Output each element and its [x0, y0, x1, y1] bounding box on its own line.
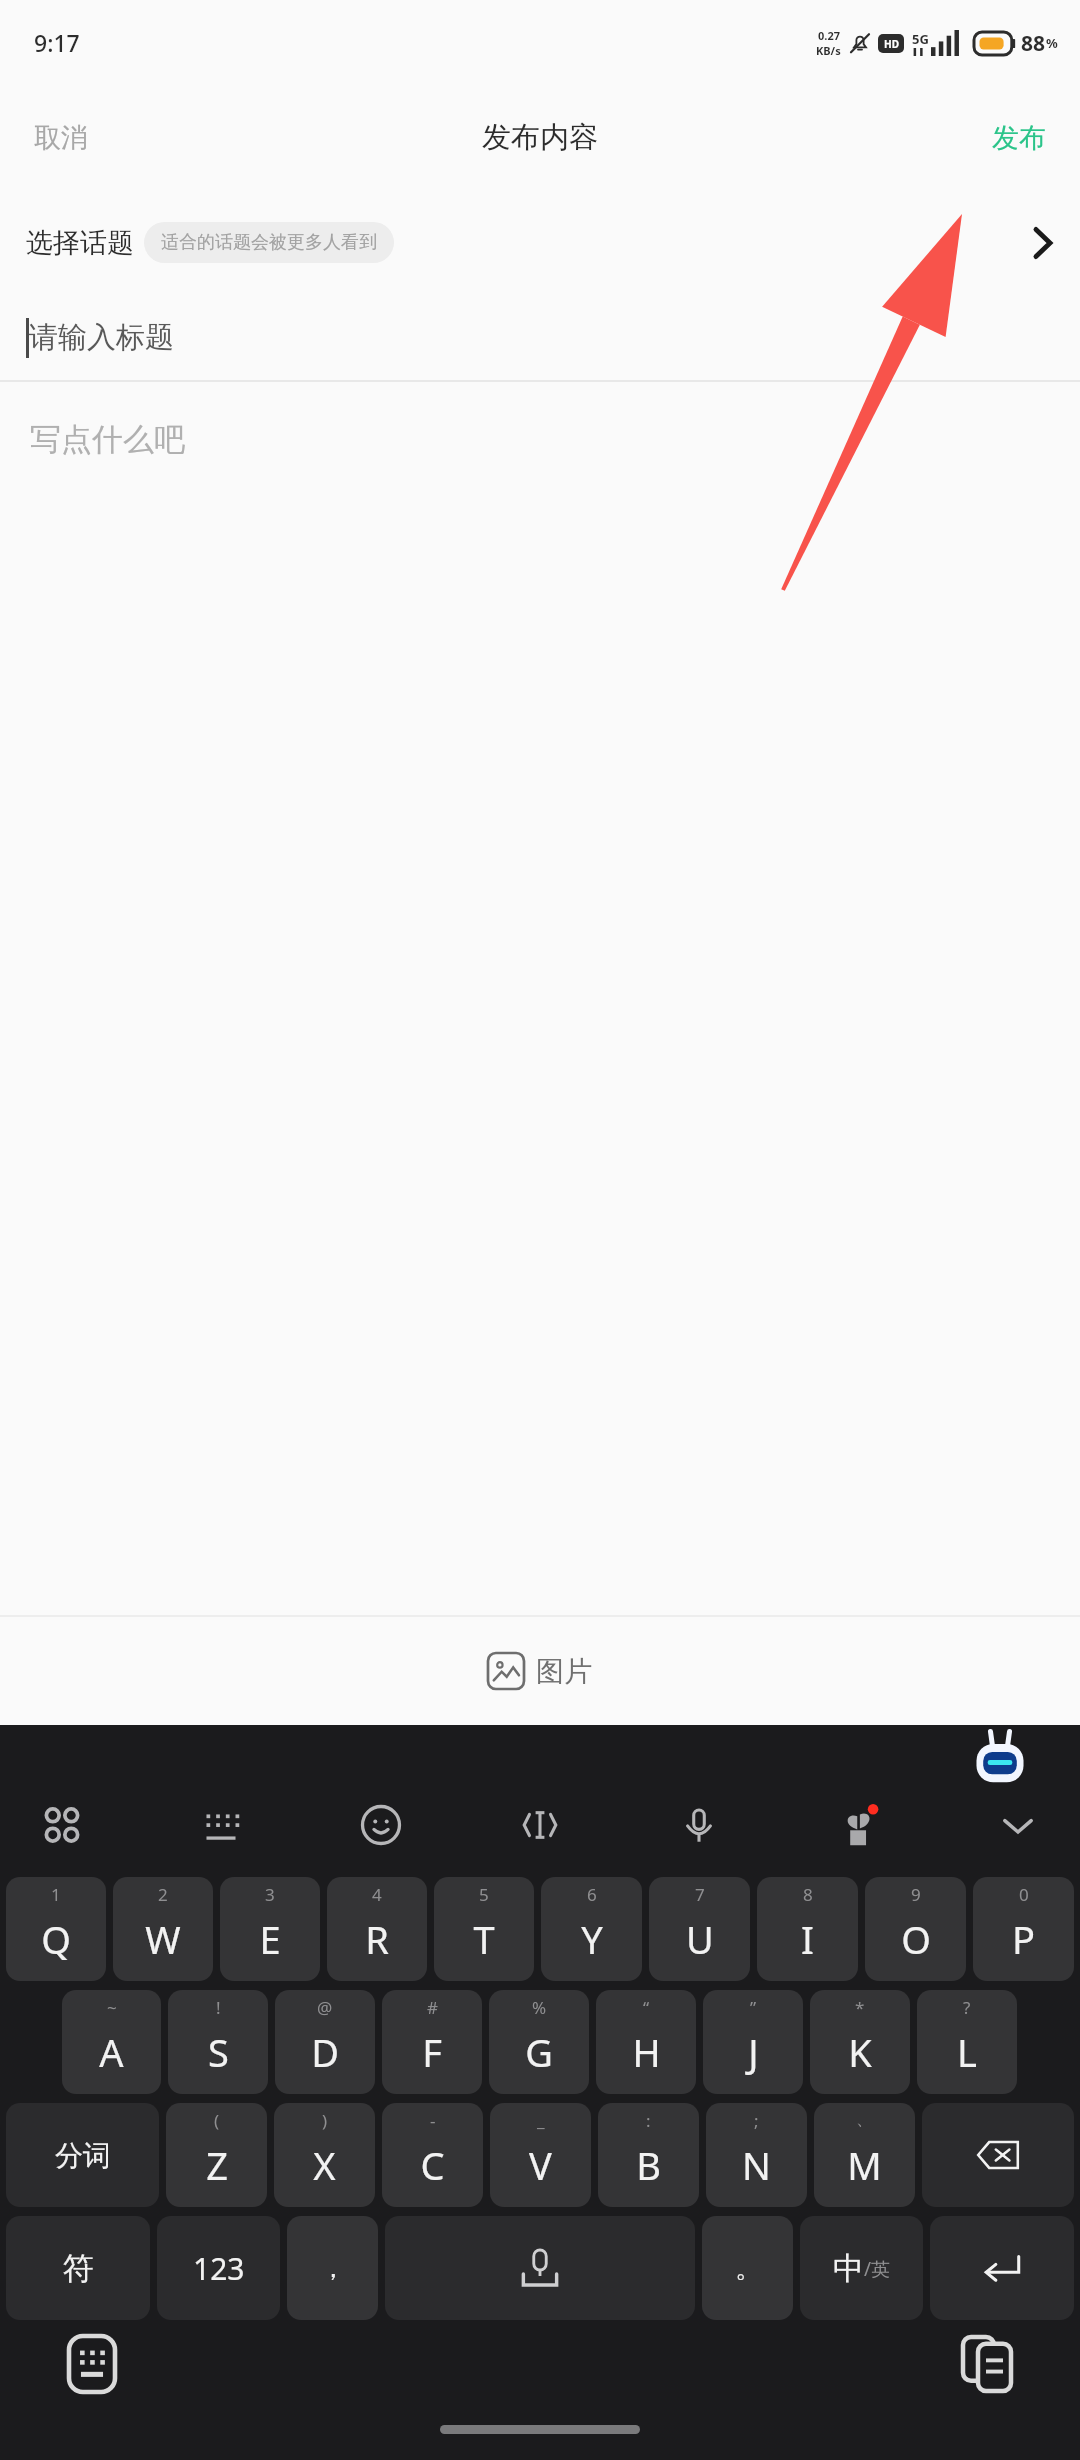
- button[interactable]: Switch keyboard: [60, 2332, 124, 2396]
- staticText: X: [313, 2139, 336, 2191]
- staticText: Z: [206, 2139, 228, 2191]
- staticText: 分词: [55, 2138, 111, 2173]
- staticText: ”: [750, 1996, 757, 2019]
- staticText: W: [145, 1913, 181, 1965]
- staticText: U: [686, 1913, 714, 1965]
- staticText: 123: [193, 2248, 245, 2289]
- button[interactable]: 2: [113, 1877, 213, 1981]
- staticText: 8: [803, 1883, 813, 1906]
- staticText: !: [216, 1996, 221, 2019]
- staticText: V: [529, 2139, 552, 2191]
- staticText: /英: [864, 2256, 891, 2282]
- button[interactable]: _: [490, 2103, 591, 2207]
- button[interactable]: Keyboard layout: [183, 1787, 259, 1863]
- staticText: %: [1046, 34, 1058, 52]
- button[interactable]: ?: [917, 1990, 1017, 2094]
- button[interactable]: 5: [434, 1877, 534, 1981]
- staticText: L: [957, 2026, 977, 2078]
- button[interactable]: Backspace: [922, 2103, 1074, 2207]
- staticText: S: [208, 2026, 229, 2078]
- button[interactable]: 7: [649, 1877, 750, 1981]
- staticText: @: [317, 1996, 333, 2019]
- button[interactable]: 6: [541, 1877, 642, 1981]
- button[interactable]: Clipboard: [956, 2332, 1020, 2396]
- staticText: -: [430, 2109, 436, 2132]
- staticText: 发布: [992, 121, 1046, 155]
- button[interactable]: 图片: [468, 1643, 612, 1699]
- staticText: *: [855, 1996, 865, 2019]
- button[interactable]: -: [382, 2103, 483, 2207]
- staticText: 取消: [34, 121, 88, 155]
- button[interactable]: 。: [702, 2216, 793, 2320]
- staticText: _: [537, 2109, 545, 2132]
- staticText: N: [742, 2139, 771, 2191]
- staticText: H: [632, 2026, 661, 2078]
- button[interactable]: 分词: [6, 2103, 159, 2207]
- staticText: G: [525, 2026, 553, 2078]
- button[interactable]: Emoji: [343, 1787, 419, 1863]
- button[interactable]: 、: [814, 2103, 915, 2207]
- staticText: :: [646, 2109, 651, 2132]
- button[interactable]: ~: [62, 1990, 161, 2094]
- staticText: (: [214, 2109, 220, 2132]
- button[interactable]: Voice input: [661, 1787, 737, 1863]
- button[interactable]: Collapse keyboard: [980, 1787, 1056, 1863]
- button[interactable]: Sticker: [821, 1787, 897, 1863]
- button[interactable]: Space: [385, 2216, 695, 2320]
- staticText: B: [636, 2139, 661, 2191]
- staticText: 4: [372, 1883, 382, 1906]
- staticText: 3: [265, 1883, 275, 1906]
- staticText: “: [643, 1996, 650, 2019]
- other: 选择话题: [1032, 226, 1054, 260]
- staticText: F: [422, 2026, 442, 2078]
- button[interactable]: Enter: [930, 2216, 1074, 2320]
- staticText: O: [901, 1913, 931, 1965]
- staticText: K: [848, 2026, 872, 2078]
- staticText: 5: [479, 1883, 489, 1906]
- button[interactable]: !: [168, 1990, 268, 2094]
- staticText: 。: [735, 2252, 761, 2285]
- staticText: E: [259, 1913, 281, 1965]
- button[interactable]: 中: [800, 2216, 923, 2320]
- staticText: 6: [587, 1883, 597, 1906]
- other: AI assistant: [972, 1729, 1028, 1791]
- button[interactable]: :: [598, 2103, 699, 2207]
- button[interactable]: 发布: [958, 85, 1080, 190]
- button[interactable]: ”: [703, 1990, 803, 2094]
- button[interactable]: (: [166, 2103, 267, 2207]
- staticText: 1: [51, 1883, 61, 1906]
- button[interactable]: *: [810, 1990, 910, 2094]
- button[interactable]: Text edit: [502, 1787, 578, 1863]
- staticText: 5G: [912, 30, 929, 48]
- button[interactable]: 4: [327, 1877, 427, 1981]
- staticText: %: [532, 1996, 547, 2019]
- staticText: 9: [911, 1883, 921, 1906]
- button[interactable]: 1: [6, 1877, 106, 1981]
- button[interactable]: #: [382, 1990, 482, 2094]
- staticText: 、: [856, 2109, 873, 2130]
- button[interactable]: ;: [706, 2103, 807, 2207]
- button[interactable]: 3: [220, 1877, 320, 1981]
- button[interactable]: 9: [865, 1877, 966, 1981]
- button[interactable]: %: [489, 1990, 589, 2094]
- button[interactable]: 0: [973, 1877, 1074, 1981]
- staticText: T: [473, 1913, 495, 1965]
- button[interactable]: 选择话题: [0, 190, 1080, 295]
- staticText: D: [311, 2026, 339, 2078]
- staticText: I: [801, 1913, 814, 1965]
- staticText: HD: [884, 37, 899, 51]
- button[interactable]: ): [274, 2103, 375, 2207]
- staticText: ): [322, 2109, 328, 2132]
- button[interactable]: ，: [287, 2216, 378, 2320]
- staticText: ，: [320, 2252, 346, 2285]
- button[interactable]: 123: [157, 2216, 280, 2320]
- staticText: 0.27: [818, 28, 840, 43]
- button[interactable]: 8: [757, 1877, 858, 1981]
- staticText: 0: [1019, 1883, 1029, 1906]
- staticText: J: [748, 2026, 759, 2078]
- button[interactable]: 取消: [0, 85, 122, 190]
- button[interactable]: “: [596, 1990, 696, 2094]
- button[interactable]: 符: [6, 2216, 150, 2320]
- button[interactable]: @: [275, 1990, 375, 2094]
- button[interactable]: Apps: [24, 1787, 100, 1863]
